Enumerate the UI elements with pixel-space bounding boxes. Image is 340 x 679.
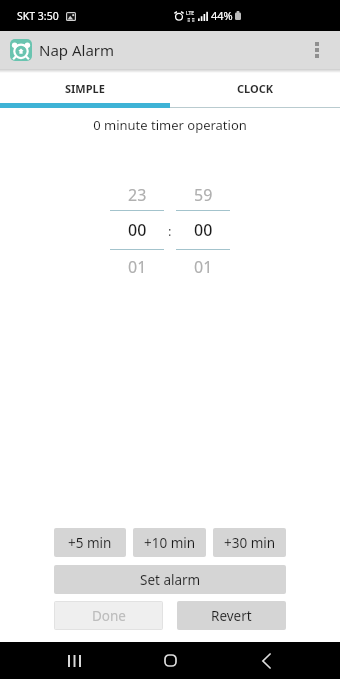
staticText: :	[168, 222, 172, 240]
button[interactable]: Home	[151, 642, 189, 679]
button[interactable]: Done	[55, 602, 162, 629]
button[interactable]: +5 min	[54, 528, 126, 557]
staticText: Set alarm	[140, 571, 201, 589]
staticText: +30 min	[224, 534, 276, 552]
staticText: Revert	[211, 607, 252, 625]
staticText: 59	[194, 184, 213, 206]
staticText: 44%	[211, 8, 233, 23]
button[interactable]: +30 min	[213, 528, 286, 557]
staticText: +5 min	[68, 534, 112, 552]
staticText: CLOCK	[237, 81, 274, 96]
staticText: Done	[92, 607, 126, 625]
button[interactable]: 00	[176, 211, 230, 249]
button[interactable]: CLOCK	[170, 73, 340, 103]
staticText: LTE	[186, 10, 195, 17]
staticText: Nap Alarm	[39, 40, 115, 60]
button[interactable]: +10 min	[133, 528, 206, 557]
staticText: +10 min	[144, 534, 196, 552]
staticText: 00	[194, 219, 213, 241]
staticText: 0 minute timer operation	[0, 116, 340, 134]
staticText: SIMPLE	[65, 81, 105, 96]
button[interactable]: More options	[305, 31, 329, 69]
button[interactable]: Set alarm	[54, 565, 286, 594]
staticText: 01	[128, 256, 147, 278]
button[interactable]: SIMPLE	[0, 73, 170, 103]
button[interactable]: Revert	[177, 601, 286, 630]
button[interactable]: Recents	[55, 642, 93, 679]
staticText: 00	[128, 219, 147, 241]
staticText: 23	[128, 184, 147, 206]
button[interactable]: Back	[247, 642, 285, 679]
staticText: 01	[194, 256, 213, 278]
staticText: SKT 3:50	[17, 9, 59, 23]
button[interactable]: 00	[110, 211, 164, 249]
